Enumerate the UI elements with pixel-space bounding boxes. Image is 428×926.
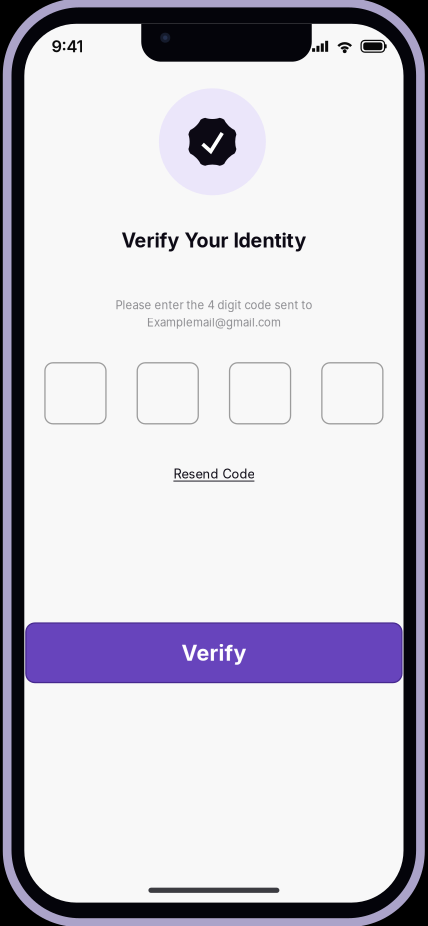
button[interactable]: Code digit — [137, 363, 198, 424]
staticText: Please enter the 4 digit code sent to — [115, 298, 312, 312]
staticText: Verify — [181, 640, 246, 666]
button[interactable]: Code digit — [322, 363, 383, 424]
staticText: Resend Code — [173, 466, 254, 482]
staticText: Examplemail@gmail.com — [147, 316, 281, 329]
button[interactable]: Verify — [26, 623, 402, 682]
button[interactable]: Resend Code — [165, 460, 262, 488]
staticText: Verify Your Identity — [121, 228, 306, 252]
staticText: 9:41 — [51, 36, 83, 56]
button[interactable]: Code digit — [230, 363, 291, 424]
button[interactable]: Code digit — [45, 363, 106, 424]
